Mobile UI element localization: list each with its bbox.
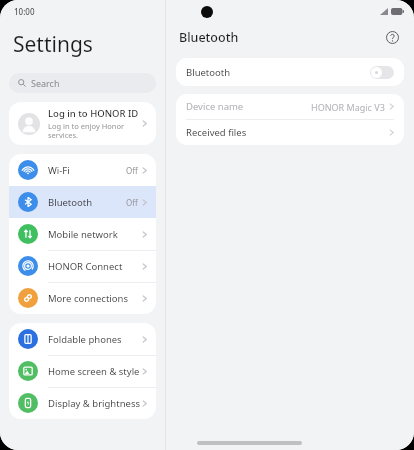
staticText: HONOR Connect <box>48 260 142 273</box>
button[interactable]: Bluetooth <box>176 58 404 86</box>
button[interactable]: Bluetooth <box>9 186 156 218</box>
button[interactable]: Display & brightness <box>9 387 156 419</box>
button[interactable]: Search <box>9 73 156 93</box>
button[interactable]: Log in to HONOR ID <box>9 102 156 145</box>
button[interactable]: Wi-Fi <box>9 154 156 186</box>
staticText: Bluetooth <box>179 29 383 46</box>
staticText: Log in to HONOR ID <box>48 107 139 120</box>
button[interactable]: Bluetooth toggle <box>370 66 394 79</box>
staticText: Mobile network <box>48 228 142 241</box>
staticText: Off <box>126 197 138 208</box>
staticText: Foldable phones <box>48 333 142 346</box>
button[interactable]: Home screen & style <box>9 355 156 387</box>
button[interactable]: Foldable phones <box>9 323 156 355</box>
staticText: More connections <box>48 292 142 305</box>
button[interactable]: Device name <box>176 94 404 119</box>
button[interactable]: Help <box>383 28 401 46</box>
staticText: Received files <box>186 126 389 139</box>
button[interactable]: Received files <box>176 120 404 145</box>
staticText: Home screen & style <box>48 365 142 378</box>
staticText: HONOR Magic V3 <box>311 101 385 113</box>
staticText: Bluetooth <box>48 196 126 209</box>
staticText: Settings <box>13 30 93 59</box>
staticText: 10:00 <box>14 6 35 17</box>
button[interactable]: Mobile network <box>9 218 156 250</box>
staticText: Search <box>31 77 60 89</box>
staticText: Display & brightness <box>48 397 142 410</box>
button[interactable]: HONOR Connect <box>9 250 156 282</box>
staticText: Log in to enjoy Honor services. <box>48 121 125 140</box>
staticText: Device name <box>186 100 311 113</box>
staticText: Off <box>126 165 138 176</box>
staticText: Bluetooth <box>186 66 370 79</box>
button[interactable]: More connections <box>9 282 156 314</box>
staticText: Wi-Fi <box>48 164 126 177</box>
